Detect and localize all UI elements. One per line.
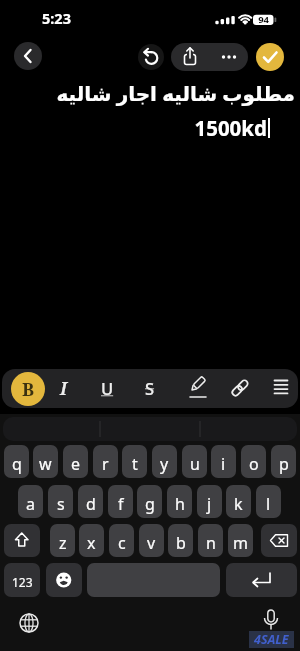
staticText: a [26,493,35,515]
button[interactable] [261,524,297,557]
button[interactable] [256,43,284,71]
staticText: 4SALE [254,631,289,648]
button[interactable]: s [48,485,73,518]
button[interactable]: x [79,524,104,557]
staticText: 123 [12,574,33,590]
button[interactable]: n [198,524,223,557]
button[interactable]: r [93,445,118,478]
staticText: g [145,493,155,515]
staticText: d [86,493,96,515]
button[interactable]: j [197,485,222,518]
button[interactable] [171,43,248,71]
button[interactable] [226,374,254,402]
button[interactable]: v [139,524,164,557]
button[interactable]: b [168,524,193,557]
button[interactable]: g [137,485,162,518]
button[interactable]: m [228,524,253,557]
staticText: t [132,453,138,475]
staticText: q [12,453,22,475]
staticText: m [233,532,248,554]
button[interactable]: 123 [4,563,40,597]
button[interactable] [259,608,283,632]
button[interactable]: q [4,445,29,478]
staticText: k [234,493,243,515]
button[interactable]: f [108,485,133,518]
button[interactable]: I [49,374,77,402]
staticText: y [160,453,169,475]
staticText: w [39,453,52,475]
button[interactable]: U [93,374,121,402]
staticText: f [118,493,124,515]
button[interactable] [14,42,42,70]
button[interactable]: d [78,485,103,518]
staticText: o [249,453,259,475]
staticText: l [266,493,271,515]
staticText: c [118,532,126,554]
button[interactable] [4,524,40,557]
staticText: v [147,532,156,554]
staticText: s [57,493,65,515]
staticText: r [102,453,109,475]
button[interactable]: t [122,445,147,478]
staticText: مطلوب شاليه اجار شاليه [0,80,295,112]
button[interactable] [17,611,41,635]
staticText: 1500kd [0,114,267,142]
button[interactable]: k [226,485,251,518]
staticText: p [279,453,289,475]
staticText: S [145,377,155,399]
button[interactable]: p [271,445,296,478]
staticText: e [71,453,81,475]
staticText: z [59,532,67,554]
button[interactable]: h [167,485,192,518]
staticText: b [176,532,186,554]
staticText: U [101,377,114,399]
button[interactable]: B [11,372,45,406]
button[interactable]: a [18,485,43,518]
button[interactable] [138,44,164,70]
staticText: I [60,376,67,401]
button[interactable]: u [182,445,207,478]
staticText: 94 [216,13,269,27]
button[interactable]: S [136,374,164,402]
staticText: h [175,493,185,515]
button[interactable]: e [63,445,88,478]
button[interactable]: l [256,485,281,518]
staticText: n [206,532,216,554]
button[interactable]: o [241,445,266,478]
staticText: u [190,453,200,475]
button[interactable]: z [50,524,75,557]
staticText: B [22,377,35,402]
staticText: i [221,453,226,475]
button[interactable] [87,563,220,597]
button[interactable] [226,563,297,597]
button[interactable] [46,563,82,597]
button[interactable]: c [109,524,134,557]
staticText: x [87,532,96,554]
button[interactable] [184,374,212,402]
button[interactable]: w [33,445,58,478]
staticText: j [207,493,212,515]
button[interactable] [268,374,294,400]
staticText: 5:23 [42,8,71,28]
button[interactable]: i [211,445,236,478]
button[interactable]: y [152,445,177,478]
